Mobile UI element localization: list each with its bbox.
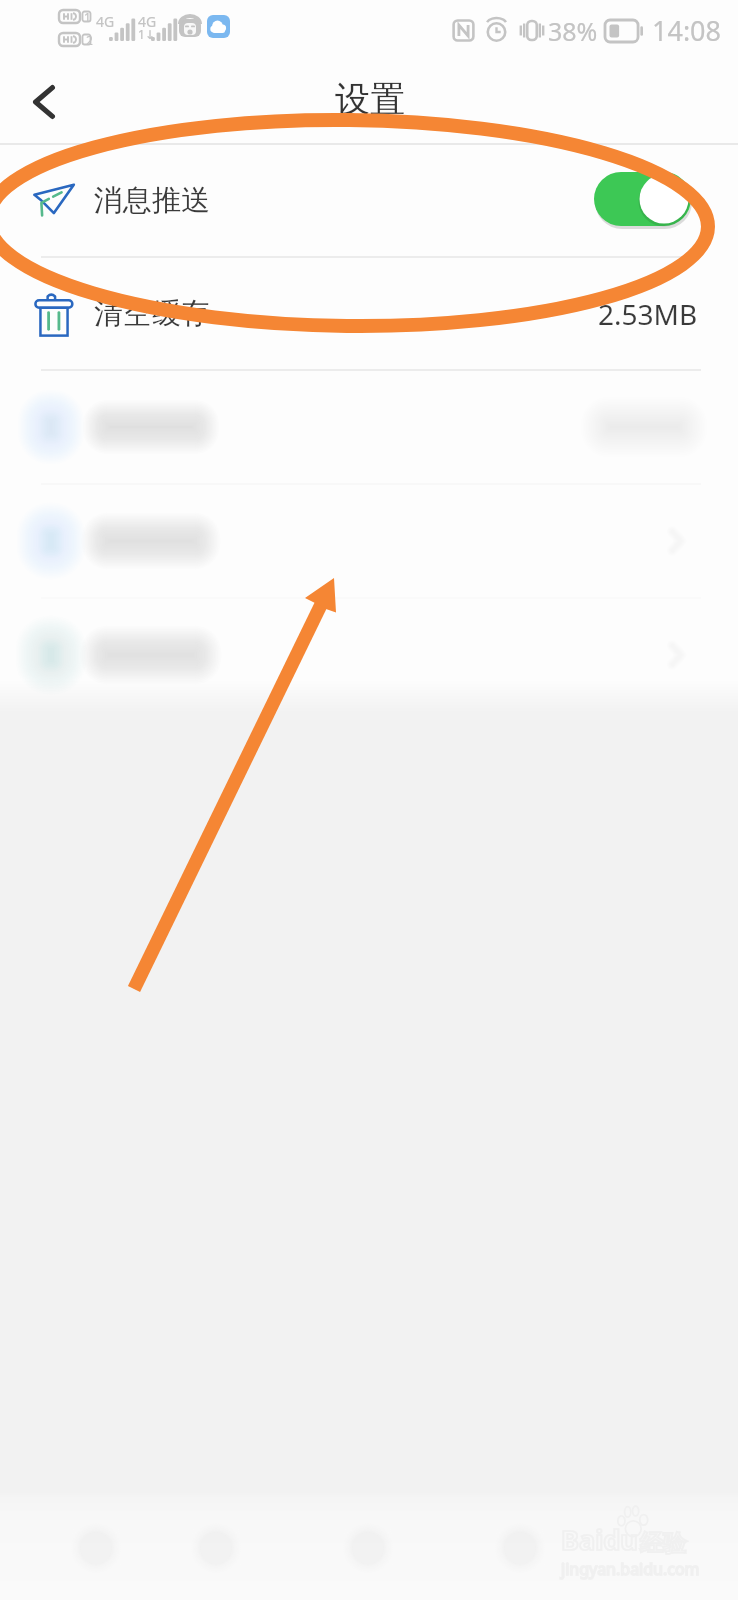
button[interactable] [0,599,738,711]
button[interactable]: Tab 4 [480,1492,650,1600]
staticText: 4G [96,12,115,31]
button[interactable]: Back [0,60,88,143]
staticText: 消息推送 [94,182,210,219]
button[interactable]: 消息推送 [0,145,738,256]
staticText: 14:08 [652,12,722,49]
button[interactable]: Push notifications toggle, on [594,172,691,226]
staticText: Baidu [561,1521,638,1558]
staticText: 经验 [640,1529,686,1558]
staticText: jingyan.baidu.com [561,1558,700,1580]
staticText: 清空缓存 [94,295,210,332]
staticText: 1 [84,9,91,25]
button[interactable]: 清空缓存 [0,258,738,369]
button[interactable] [0,371,738,483]
staticText: 1↓ [138,26,155,42]
staticText: 38% [548,14,598,48]
staticText: 2.53MB [598,295,698,333]
staticText: 2 [86,32,93,48]
button[interactable] [0,485,738,597]
staticText: 设置 [335,77,405,121]
staticText: 4G [138,12,157,31]
